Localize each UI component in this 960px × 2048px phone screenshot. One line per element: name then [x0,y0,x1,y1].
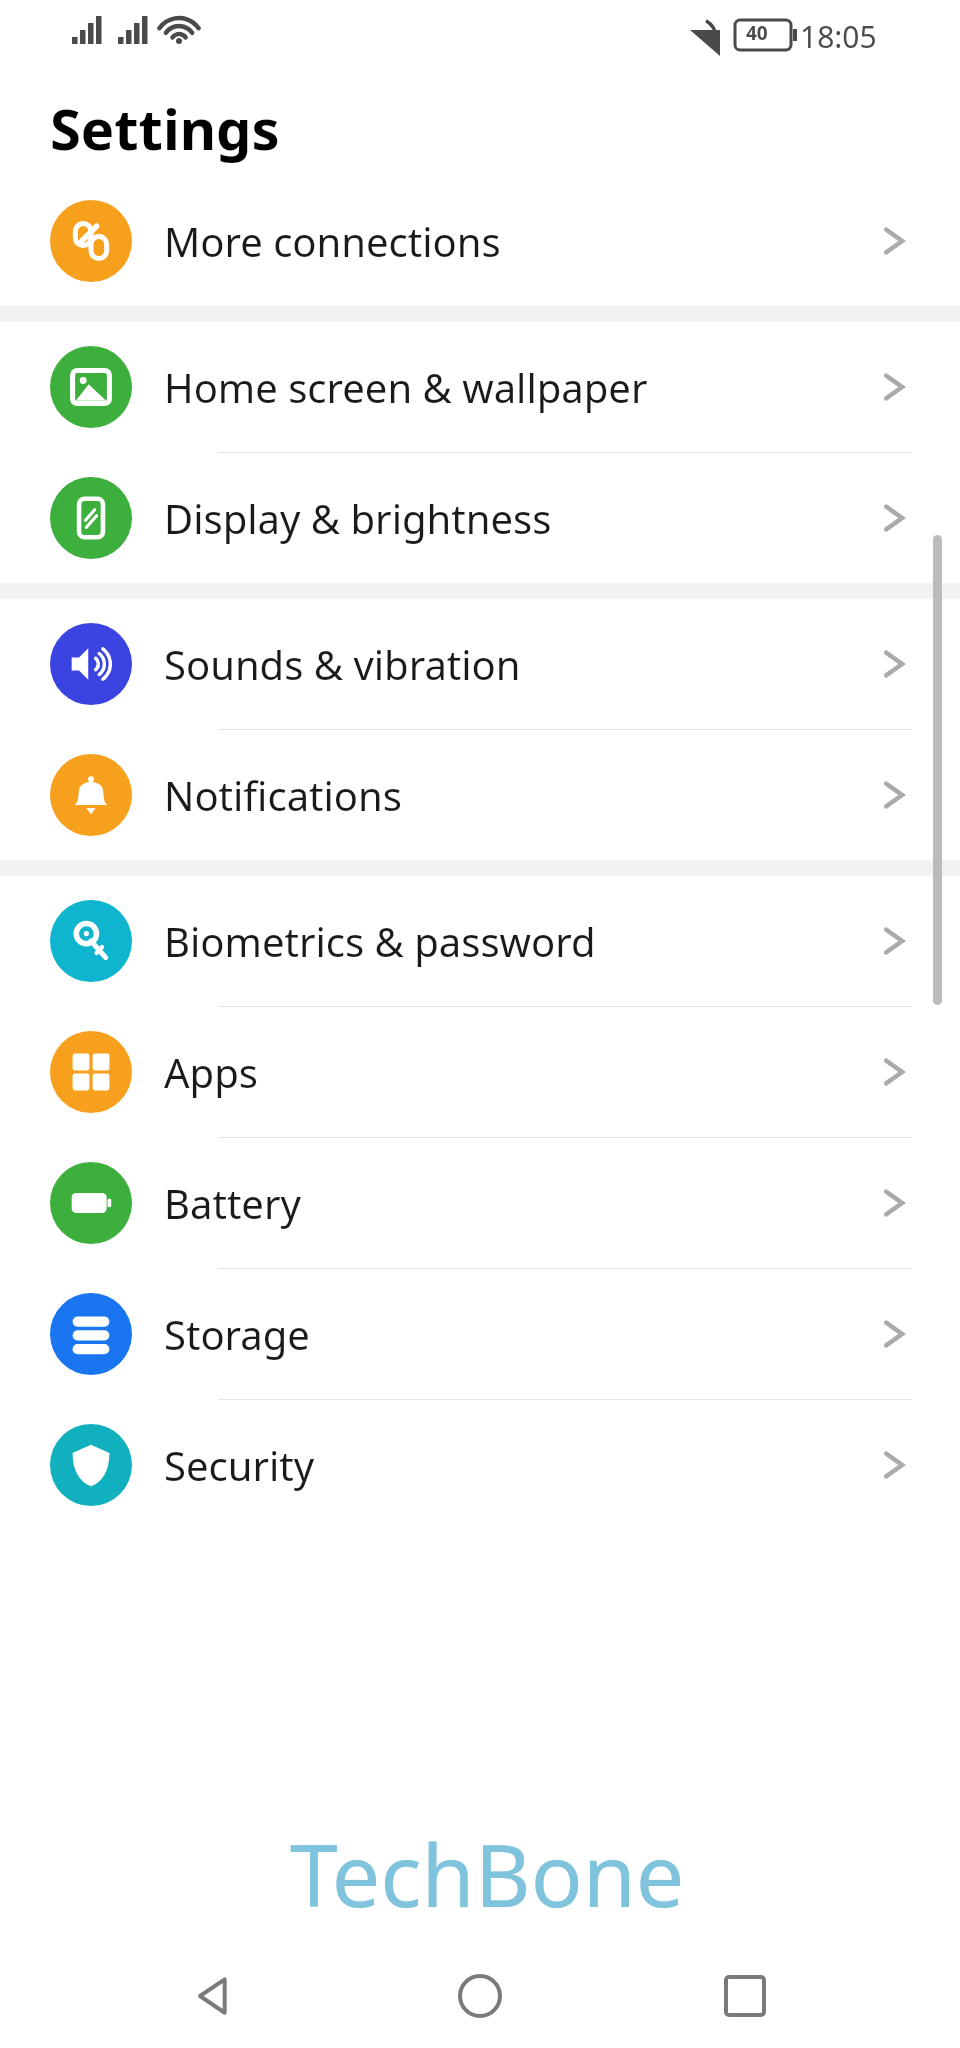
button[interactable]: Back [165,1946,265,2046]
staticText: 40 [746,20,768,46]
button[interactable]: Biometrics & password [0,876,960,1007]
staticText: 18:05 [800,16,877,57]
staticText: Sounds & vibration [164,637,521,691]
button[interactable]: Security [0,1400,960,1530]
button[interactable]: Apps [0,1007,960,1138]
staticText: Battery [164,1176,301,1230]
staticText: Apps [164,1045,258,1099]
button[interactable]: Home screen & wallpaper [0,322,960,453]
button[interactable]: Battery [0,1138,960,1269]
staticText: Notifications [164,768,402,822]
staticText: Home screen & wallpaper [164,360,648,414]
staticText: Display & brightness [164,491,552,545]
button[interactable]: Storage [0,1269,960,1400]
button[interactable]: Display & brightness [0,453,960,583]
staticText: Storage [164,1307,310,1361]
button[interactable]: More connections [0,176,960,306]
staticText: Security [164,1438,315,1492]
button[interactable]: Sounds & vibration [0,599,960,730]
staticText: TechBone [290,1815,685,1932]
staticText: More connections [164,214,501,268]
button[interactable]: Recent apps [695,1946,795,2046]
staticText: Biometrics & password [164,914,596,968]
staticText: Settings [50,90,280,166]
button[interactable]: Home [430,1946,530,2046]
button[interactable]: Notifications [0,730,960,860]
